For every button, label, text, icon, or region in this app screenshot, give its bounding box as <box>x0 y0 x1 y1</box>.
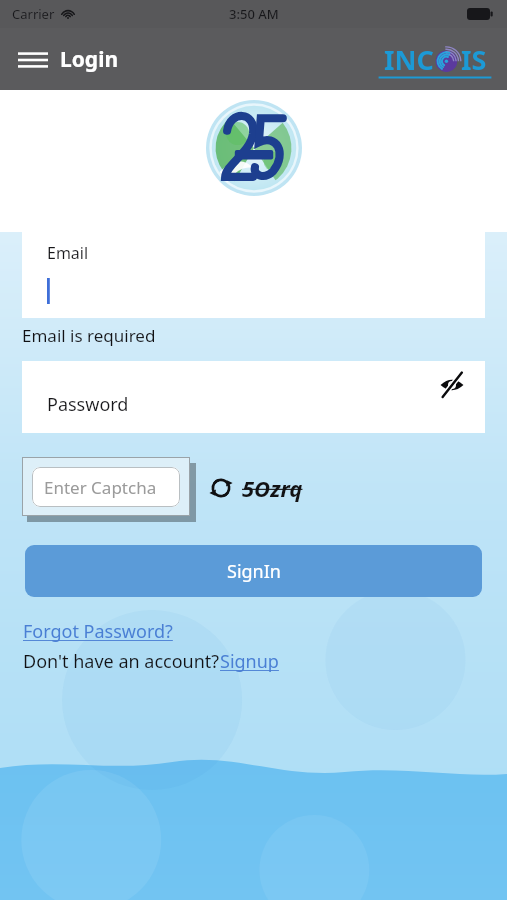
staticText: Password <box>47 392 129 417</box>
staticText: 3:50 AM <box>229 5 279 23</box>
staticText: Carrier <box>12 5 55 23</box>
staticText: SignIn <box>227 559 281 584</box>
staticText: INC <box>384 41 434 78</box>
button[interactable]: Signup <box>220 649 279 674</box>
staticText: IS <box>461 41 487 78</box>
button[interactable]: Email <box>22 228 485 318</box>
button[interactable]: Enter Captcha <box>22 457 190 516</box>
button[interactable]: Forgot Password? <box>23 619 173 644</box>
button[interactable]: Show password <box>433 369 471 401</box>
staticText: Forgot Password? <box>23 619 173 644</box>
staticText: Don't have an account? <box>23 649 220 674</box>
other: Open navigation menu <box>18 50 48 70</box>
staticText: Enter Captcha <box>44 476 157 499</box>
button[interactable]: Password <box>22 361 485 433</box>
staticText: Signup <box>220 649 279 674</box>
button[interactable]: SignIn <box>25 545 482 597</box>
staticText: Email is required <box>22 324 156 347</box>
staticText: Login <box>60 45 119 74</box>
button[interactable]: Open navigation menu <box>14 41 123 78</box>
staticText: 5Ozrq <box>242 473 303 503</box>
staticText: Email <box>47 242 89 264</box>
button[interactable]: Refresh captcha <box>206 473 236 503</box>
